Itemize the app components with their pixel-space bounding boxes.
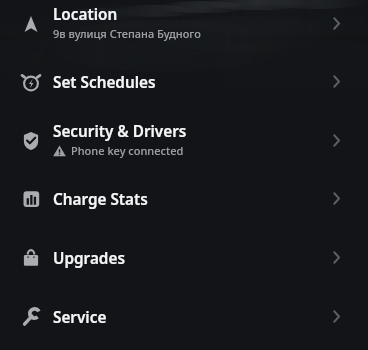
- staticText: Charge Stats: [53, 189, 148, 210]
- staticText: Upgrades: [53, 248, 125, 269]
- button[interactable]: Charge Stats: [0, 169, 368, 228]
- staticText: Location: [53, 4, 118, 25]
- staticText: 9в вулиця Степана Будного: [53, 26, 201, 41]
- button[interactable]: Security & Drivers: [0, 111, 368, 170]
- staticText: Set Schedules: [53, 72, 156, 93]
- staticText: Security & Drivers: [53, 121, 187, 142]
- staticText: Service: [53, 307, 107, 328]
- button[interactable]: Set Schedules: [0, 52, 368, 111]
- button[interactable]: Service: [0, 287, 368, 346]
- button[interactable]: Upgrades: [0, 228, 368, 287]
- staticText: Phone key connected: [71, 143, 184, 158]
- button[interactable]: Location: [0, 0, 368, 53]
